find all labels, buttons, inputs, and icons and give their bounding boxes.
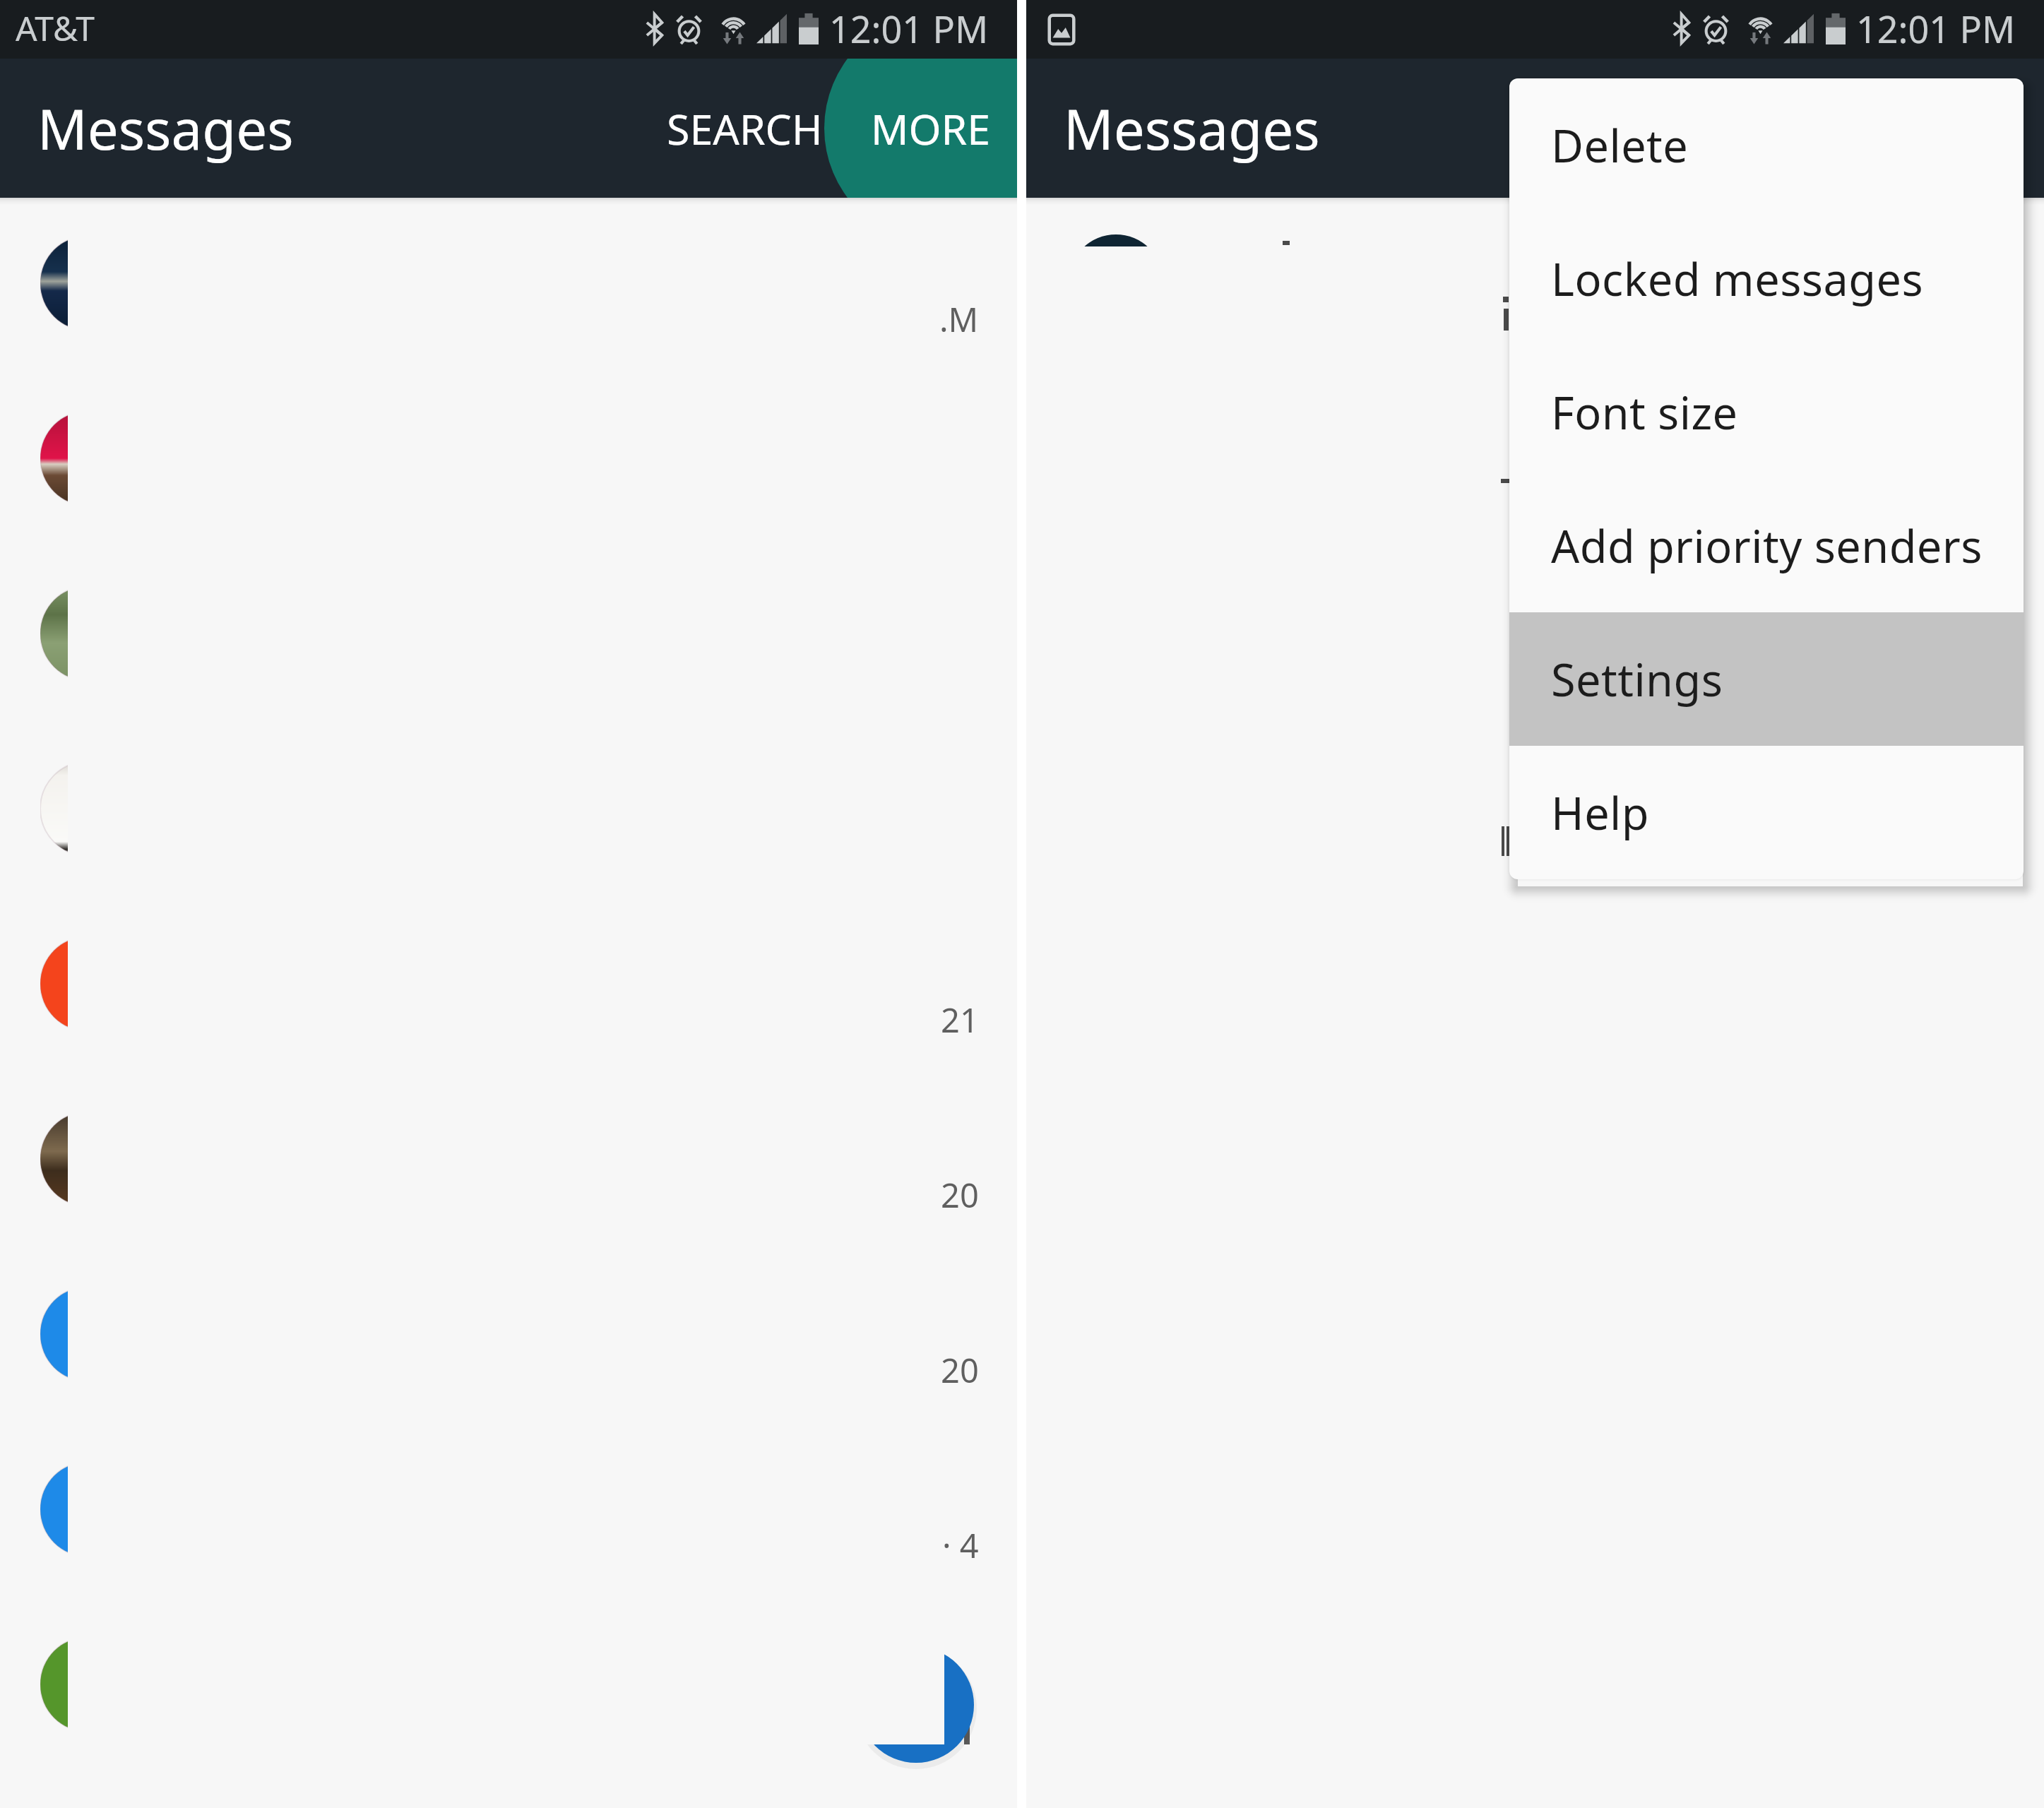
button[interactable] [0,1422,1017,1597]
button[interactable]: SEARCH [644,59,845,198]
button[interactable] [0,1597,1017,1772]
button[interactable]: Add priority senders [1509,479,2024,612]
staticText: Messages [37,91,294,166]
button[interactable]: Locked messages [1509,212,2024,345]
staticText: 20 [941,1172,979,1218]
button[interactable]: New message [858,1647,974,1763]
staticText: .M [939,297,979,342]
button[interactable]: Help [1509,746,2024,879]
staticText: Help [1551,783,1650,843]
staticText: Locked messages [1551,249,1924,309]
staticText: Delete [1551,115,1689,176]
staticText: Settings [1551,649,1723,710]
button[interactable] [0,1071,1017,1247]
button[interactable] [0,371,1017,546]
staticText: 21 [941,997,979,1042]
button[interactable] [0,1247,1017,1422]
button[interactable]: Delete [1509,78,2024,212]
button[interactable]: Font size [1509,345,2024,479]
button[interactable] [0,546,1017,721]
staticText: AT&T [16,5,95,51]
staticText: SEARCH [667,100,823,157]
staticText: 12:01 PM [829,4,989,54]
button[interactable] [0,896,1017,1071]
staticText: 20 [941,1348,979,1393]
button[interactable] [0,196,1017,371]
staticText: MORE [871,100,991,157]
staticText: Font size [1551,382,1738,443]
button[interactable]: Settings [1509,612,2024,746]
staticText: · 4 [942,1523,979,1568]
button[interactable]: MORE [845,59,1017,198]
staticText: 12:01 PM [1856,4,2016,54]
staticText: Messages [1064,91,1320,166]
staticText: Add priority senders [1551,516,1983,576]
